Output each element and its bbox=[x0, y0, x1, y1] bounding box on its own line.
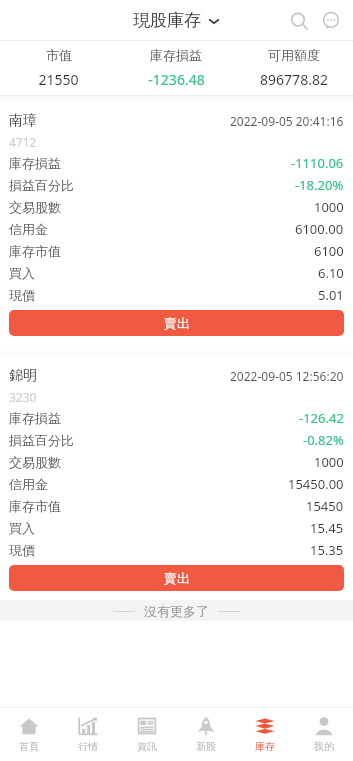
staticText: 現價 bbox=[9, 542, 35, 558]
staticText: 交易股數 bbox=[9, 454, 61, 470]
staticText: 首頁 bbox=[19, 740, 39, 753]
button[interactable]: 新股 bbox=[176, 707, 235, 761]
staticText: 資訊 bbox=[137, 740, 157, 753]
staticText: 信用金 bbox=[9, 221, 48, 237]
staticText: -126.42 bbox=[299, 409, 344, 427]
staticText: 可用額度 bbox=[268, 47, 320, 63]
staticText: 市值 bbox=[46, 47, 72, 63]
button[interactable]: 庫存 bbox=[235, 707, 294, 761]
staticText: -0.82% bbox=[303, 431, 344, 449]
staticText: 庫存損益 bbox=[9, 155, 61, 171]
staticText: 賣出 bbox=[164, 315, 190, 331]
staticText: 交易股數 bbox=[9, 199, 61, 215]
staticText: 買入 bbox=[9, 520, 35, 536]
staticText: 買入 bbox=[9, 265, 35, 281]
staticText: 21550 bbox=[38, 70, 79, 89]
staticText: 1000 bbox=[314, 453, 344, 471]
staticText: 896778.82 bbox=[260, 70, 328, 89]
staticText: 6100.00 bbox=[295, 220, 344, 238]
staticText: 新股 bbox=[196, 740, 216, 753]
staticText: 庫存市值 bbox=[9, 243, 61, 259]
button[interactable]: 首頁 bbox=[0, 707, 58, 761]
staticText: 2022-09-05 12:56:20 bbox=[230, 368, 344, 384]
staticText: 我的 bbox=[314, 740, 334, 753]
staticText: 15.35 bbox=[310, 541, 344, 559]
button[interactable]: Messages bbox=[315, 5, 347, 37]
staticText: 庫存 bbox=[255, 740, 275, 753]
staticText: 5.01 bbox=[318, 286, 344, 304]
staticText: 損益百分比 bbox=[9, 177, 74, 193]
staticText: 庫存損益 bbox=[150, 47, 202, 63]
staticText: 現股庫存 bbox=[133, 10, 201, 31]
staticText: 沒有更多了 bbox=[144, 603, 209, 619]
staticText: 現價 bbox=[9, 287, 35, 303]
staticText: 信用金 bbox=[9, 476, 48, 492]
staticText: 15450 bbox=[306, 497, 344, 515]
staticText: -1236.48 bbox=[148, 70, 205, 89]
button[interactable]: 庫存損益 bbox=[117, 47, 235, 89]
button[interactable]: 賣出 bbox=[9, 565, 344, 591]
staticText: 6100 bbox=[314, 242, 344, 260]
button[interactable]: Search bbox=[283, 5, 315, 37]
staticText: 4712 bbox=[9, 134, 37, 150]
staticText: -18.20% bbox=[295, 176, 344, 194]
staticText: 15.45 bbox=[310, 519, 344, 537]
button[interactable]: 市值 bbox=[0, 47, 117, 89]
button[interactable]: 我的 bbox=[294, 707, 353, 761]
staticText: 南璋 bbox=[9, 112, 37, 130]
staticText: 庫存市值 bbox=[9, 498, 61, 514]
staticText: 15450.00 bbox=[288, 475, 344, 493]
button[interactable]: 現股庫存 bbox=[133, 10, 220, 31]
button[interactable]: 賣出 bbox=[9, 310, 344, 336]
staticText: 賣出 bbox=[164, 570, 190, 586]
staticText: 損益百分比 bbox=[9, 432, 74, 448]
button[interactable]: 可用額度 bbox=[235, 47, 353, 89]
staticText: 庫存損益 bbox=[9, 410, 61, 426]
staticText: 2022-09-05 20:41:16 bbox=[230, 113, 344, 129]
staticText: 1000 bbox=[314, 198, 344, 216]
staticText: 錦明 bbox=[9, 367, 37, 385]
staticText: 行情 bbox=[78, 740, 98, 753]
staticText: 3230 bbox=[9, 389, 37, 405]
staticText: 6.10 bbox=[318, 264, 344, 282]
staticText: -1110.06 bbox=[291, 154, 344, 172]
button[interactable]: 資訊 bbox=[117, 707, 176, 761]
button[interactable]: 行情 bbox=[58, 707, 117, 761]
